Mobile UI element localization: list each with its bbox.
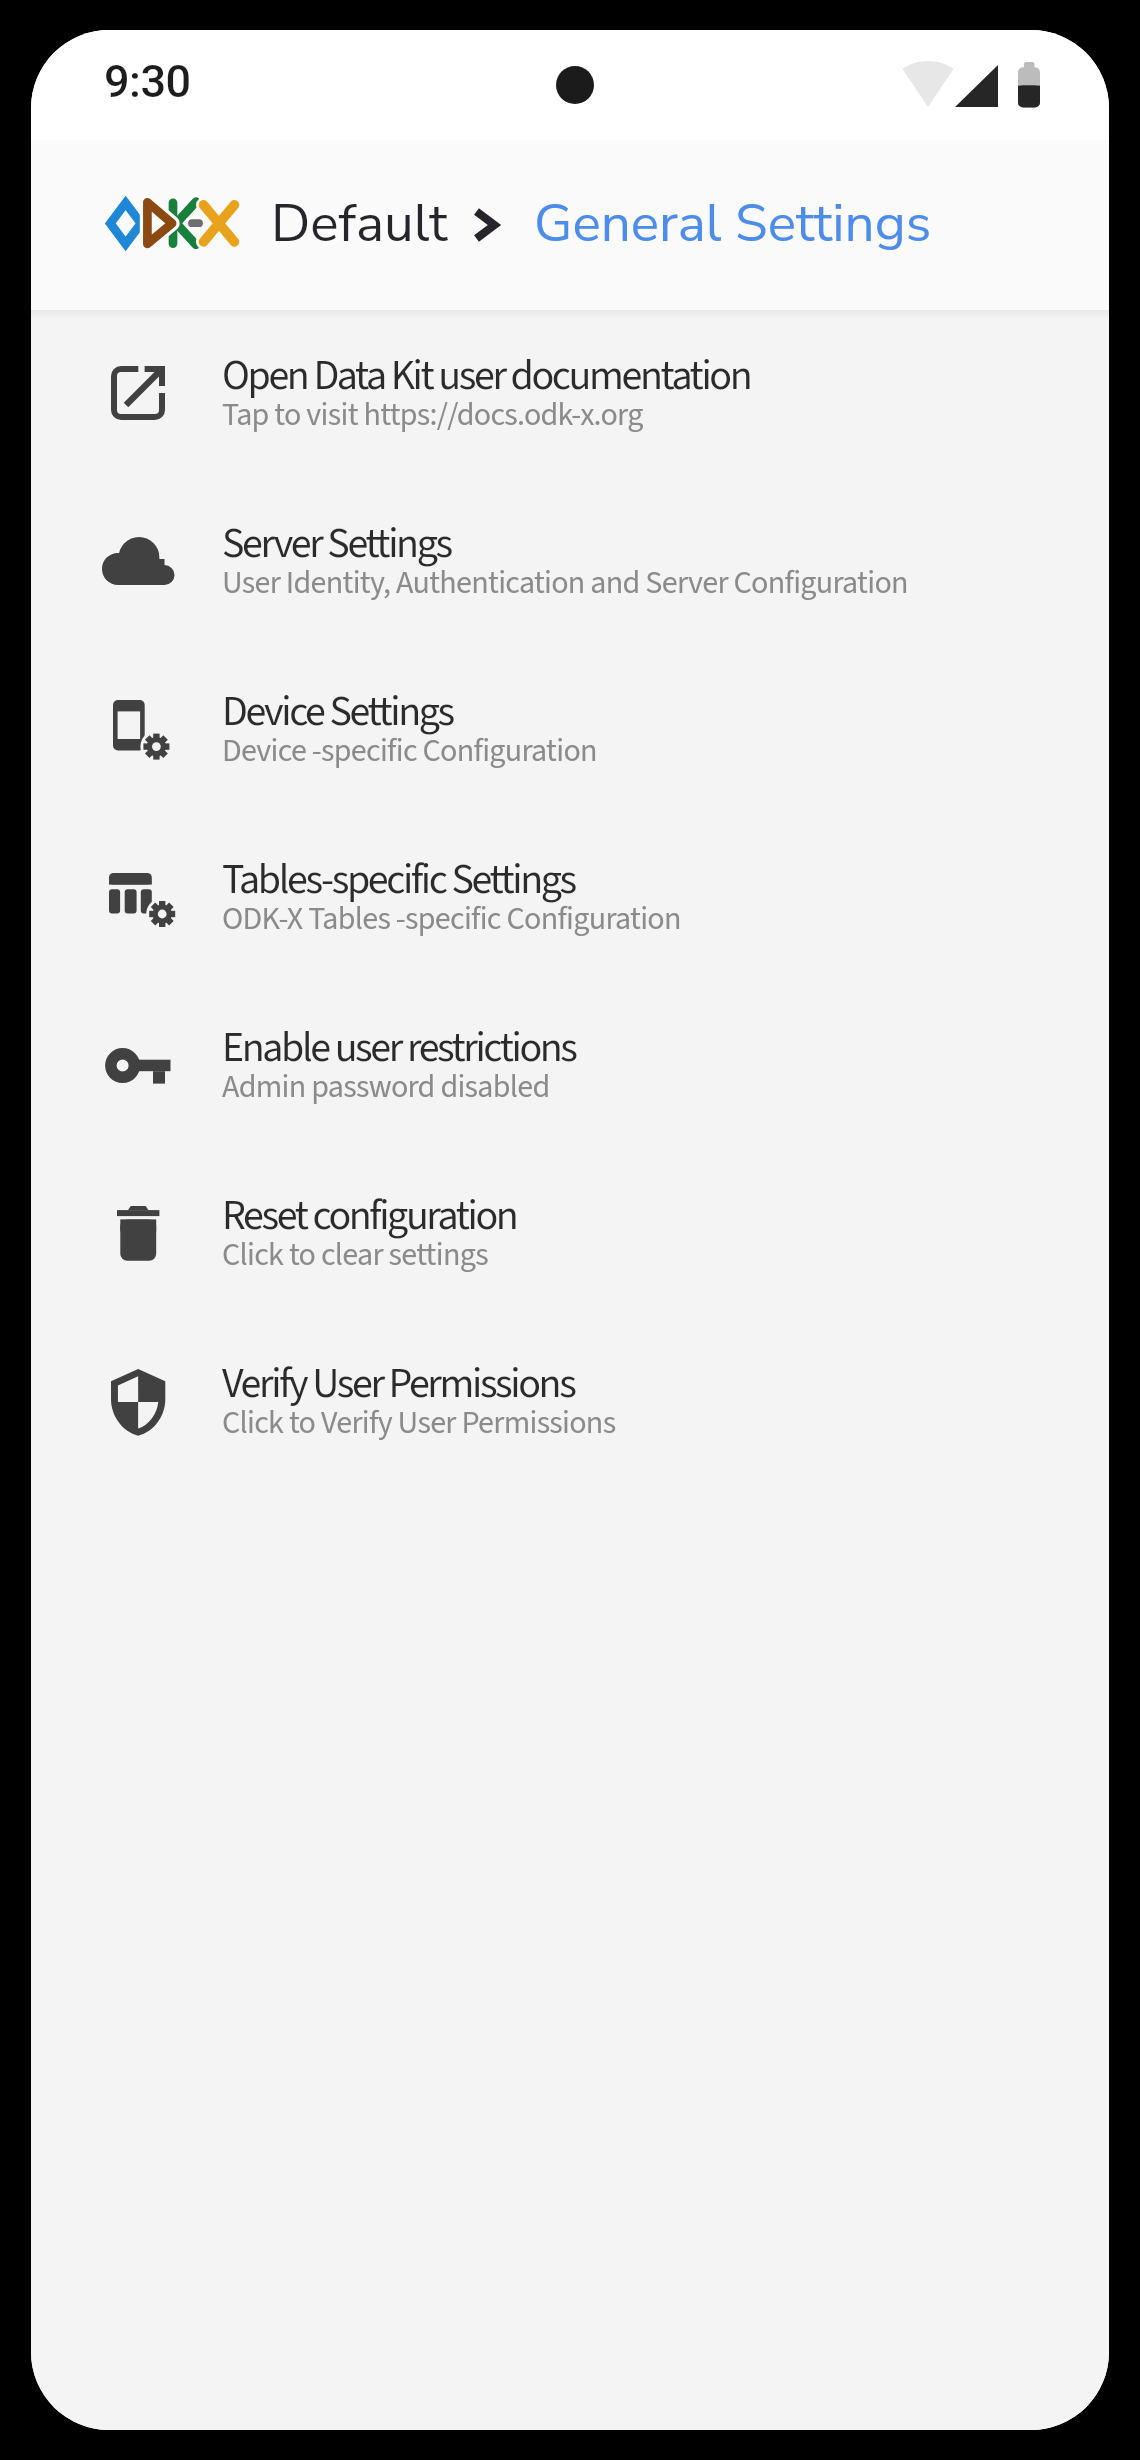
staticText: Default [271,187,448,259]
staticText: 9:30 [104,55,191,108]
button[interactable]: Default [31,140,1109,310]
staticText: Enable user restrictions [222,1018,576,1078]
staticText: Tables-specific Settings [222,850,575,910]
staticText: Device Settings [222,682,453,742]
button[interactable]: Server Settings [31,478,1109,646]
staticText: Click to clear settings [222,1232,488,1278]
staticText: User Identity, Authentication and Server… [222,560,908,606]
button[interactable]: Verify User Permissions [31,1318,1109,1486]
staticText: ODK-X Tables -specific Configuration [222,896,681,942]
staticText: Verify User Permissions [222,1354,575,1414]
button[interactable]: Tables-specific Settings [31,814,1109,982]
button[interactable]: Reset configuration [31,1150,1109,1318]
staticText: Server Settings [222,514,451,574]
staticText: Reset configuration [222,1186,517,1246]
staticText: Open Data Kit user documentation [222,346,751,406]
button[interactable]: Device Settings [31,646,1109,814]
staticText: Tap to visit https://docs.odk-x.org [222,392,643,438]
button[interactable]: Enable user restrictions [31,982,1109,1150]
staticText: Device -specific Configuration [222,728,597,774]
staticText: Click to Verify User Permissions [222,1400,616,1446]
button[interactable]: Open Data Kit user documentation [31,310,1109,478]
staticText: General Settings [534,187,932,259]
staticText: Admin password disabled [222,1064,550,1110]
